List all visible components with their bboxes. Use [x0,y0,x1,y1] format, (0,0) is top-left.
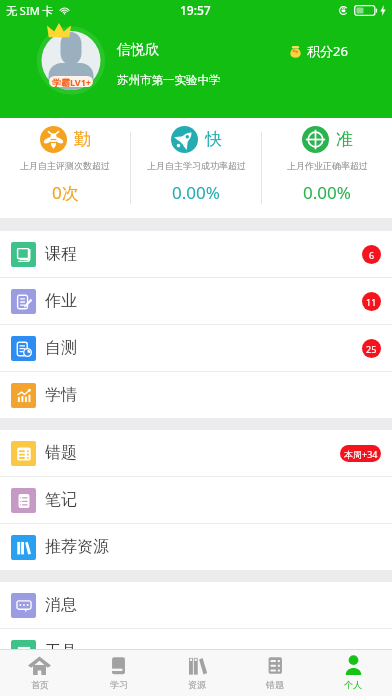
button[interactable]: 工具 [0,629,392,649]
staticText: 快 [205,129,222,150]
staticText: 19:57 [180,2,211,18]
button[interactable]: 勤 [0,118,130,218]
button[interactable]: 学习 [79,650,158,696]
staticText: 首页 [31,679,49,690]
staticText: 0.00% [172,181,220,204]
button[interactable]: 推荐资源 [0,524,392,570]
staticText: 工具 [45,642,77,649]
staticText: 25 [366,343,377,355]
staticText: 作业 [45,291,77,311]
staticText: 学习 [110,679,128,690]
staticText: 错题 [45,443,77,463]
staticText: 信悦欣 [117,41,159,59]
staticText: 上月自主学习成功率超过 [147,160,246,171]
button[interactable]: 错题 [236,650,314,696]
button[interactable]: 首页 [0,650,79,696]
staticText: 0次 [52,181,79,204]
staticText: 错题 [266,679,284,690]
staticText: 学情 [45,385,77,405]
staticText: 上月自主评测次数超过 [20,160,110,171]
staticText: 课程 [45,244,77,264]
button[interactable]: 作业 [0,278,392,324]
staticText: 本周+34 [344,448,378,460]
button[interactable]: 学情 [0,372,392,418]
button[interactable]: 资源 [158,650,236,696]
button[interactable]: 消息 [0,582,392,628]
staticText: 学霸LV1+ [52,76,91,87]
button[interactable]: 错题 [0,430,392,476]
staticText: 无 SIM 卡 [6,3,54,18]
staticText: 准 [336,129,353,150]
staticText: 消息 [45,595,77,615]
staticText: 11 [366,296,377,308]
staticText: 自测 [45,338,77,358]
button[interactable]: 准 [262,118,392,218]
button[interactable]: 快 [131,118,261,218]
staticText: 勤 [74,129,91,150]
staticText: 积分26 [307,42,348,60]
staticText: 笔记 [45,490,77,510]
button[interactable]: 笔记 [0,477,392,523]
staticText: 上月作业正确率超过 [287,160,368,171]
staticText: 6 [369,249,375,261]
staticText: 资源 [188,679,206,690]
button[interactable]: 自测 [0,325,392,371]
staticText: 苏州市第一实验中学 [117,73,221,87]
staticText: 推荐资源 [45,537,109,557]
staticText: 个人 [344,679,362,690]
button[interactable]: 个人 [314,650,392,696]
staticText: 0.00% [303,181,351,204]
button[interactable]: 课程 [0,231,392,277]
